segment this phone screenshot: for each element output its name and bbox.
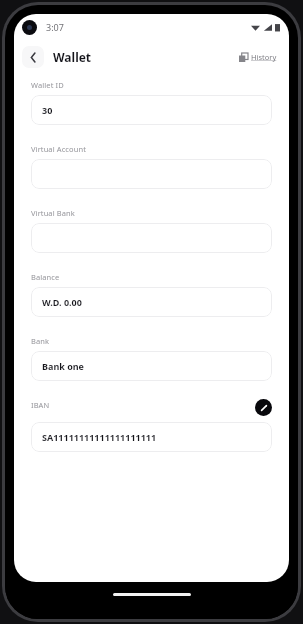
staticText: 3:07: [46, 21, 64, 33]
button[interactable]: [31, 159, 272, 189]
staticText: IBAN: [31, 400, 50, 410]
button[interactable]: [31, 223, 272, 253]
staticText: Bank: [31, 336, 50, 346]
staticText: History: [251, 52, 277, 62]
staticText: SA11111111111111111111: [42, 431, 157, 443]
staticText: Bank one: [42, 360, 84, 372]
staticText: Balance: [31, 272, 60, 282]
staticText: Wallet: [53, 49, 92, 65]
staticText: Virtual Bank: [31, 208, 75, 218]
staticText: Virtual Account: [31, 144, 86, 154]
button[interactable]: Edit: [255, 399, 272, 416]
button[interactable]: W.D. 0.00: [31, 287, 272, 317]
button[interactable]: SA11111111111111111111: [31, 422, 272, 452]
button[interactable]: Bank one: [31, 351, 272, 381]
staticText: 30: [42, 104, 53, 116]
button[interactable]: 30: [31, 95, 272, 125]
staticText: Wallet ID: [31, 80, 64, 90]
button[interactable]: Back: [22, 46, 44, 68]
staticText: W.D. 0.00: [42, 296, 82, 308]
button[interactable]: History: [235, 48, 281, 66]
